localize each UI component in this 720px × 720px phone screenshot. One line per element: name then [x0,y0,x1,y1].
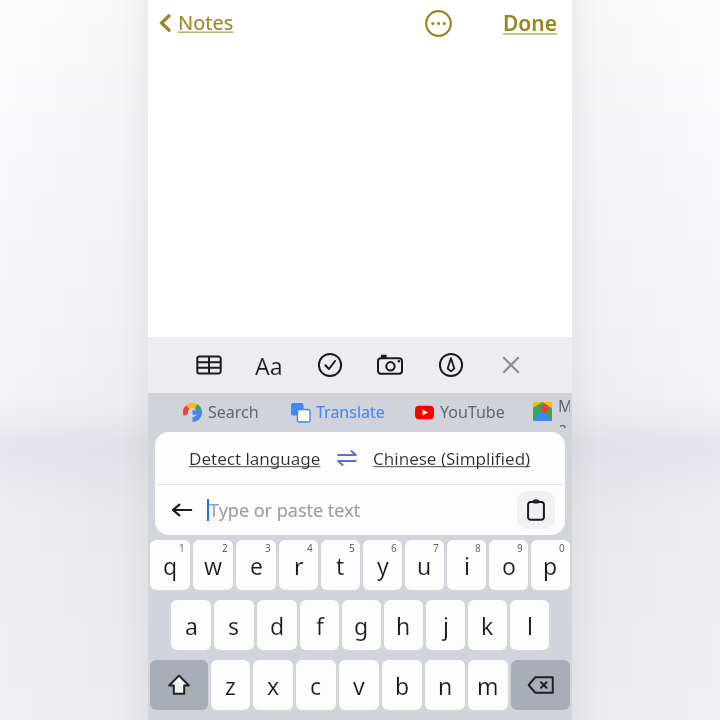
button[interactable]: Aa [252,348,286,382]
staticText: 8 [475,541,481,555]
button[interactable]: Paste from clipboard [517,491,555,529]
button[interactable]: Translate [289,399,387,425]
staticText: Search [208,401,259,423]
button[interactable]: c [296,660,336,710]
button[interactable]: Table [192,348,226,382]
button[interactable]: Shift [150,660,208,710]
button[interactable]: m [468,660,508,710]
staticText: n [438,670,453,701]
button[interactable]: Ma [531,393,572,430]
button[interactable]: x [253,660,293,710]
staticText: x [267,670,280,701]
button[interactable]: Detect language [183,443,327,474]
staticText: o [502,550,516,581]
staticText: t [336,550,345,581]
button[interactable]: Back [165,493,199,527]
staticText: b [395,670,410,701]
staticText: Type or paste text [209,498,361,523]
staticText: Notes [178,9,234,36]
staticText: Ma [558,395,570,428]
button[interactable]: l [510,600,549,650]
staticText: e [250,550,263,581]
staticText: YouTube [440,401,505,423]
staticText: a [185,610,198,641]
staticText: Chinese (Simplified) [373,447,531,470]
staticText: d [270,610,285,641]
button[interactable]: y [363,540,402,590]
button[interactable]: v [339,660,379,710]
button[interactable]: Camera [373,348,407,382]
staticText: j [443,610,449,641]
staticText: w [204,550,223,581]
button[interactable]: q [150,540,190,590]
button[interactable]: a [171,600,211,650]
button[interactable]: Swap languages [327,438,367,478]
staticText: 3 [265,541,271,555]
button[interactable]: Checklist [313,348,347,382]
button[interactable]: YouTube [413,399,507,425]
staticText: u [417,550,432,581]
button[interactable]: n [425,660,465,710]
button[interactable]: Markup [434,348,468,382]
staticText: 9 [517,541,523,555]
staticText: 6 [391,541,397,555]
button[interactable]: i [447,540,486,590]
staticText: r [294,550,304,581]
staticText: Done [503,9,558,38]
staticText: 7 [433,541,439,555]
staticText: 2 [222,541,228,555]
button[interactable]: e [236,540,276,590]
button[interactable]: s [214,600,254,650]
button[interactable]: w [193,540,233,590]
button[interactable]: Search [181,399,261,425]
staticText: z [225,670,236,701]
staticText: p [543,550,558,581]
button[interactable]: Close keyboard [494,348,528,382]
staticText: Aa [255,350,283,381]
button[interactable]: d [257,600,297,650]
staticText: 0 [559,541,565,555]
button[interactable]: h [384,600,423,650]
button[interactable]: u [405,540,444,590]
button[interactable]: Backspace [511,660,570,710]
button[interactable]: f [300,600,339,650]
button[interactable]: o [489,540,528,590]
button[interactable]: z [211,660,250,710]
button[interactable]: More options [420,5,456,41]
staticText: f [316,610,324,641]
staticText: c [310,670,322,701]
staticText: s [228,610,240,641]
staticText: g [354,610,369,641]
staticText: 1 [179,541,185,555]
button[interactable]: Chinese (Simplified) [367,443,537,474]
button[interactable]: k [468,600,507,650]
staticText: Detect language [189,447,321,470]
button[interactable]: Notes [154,5,238,40]
button[interactable]: j [426,600,465,650]
staticText: m [477,670,499,701]
staticText: l [527,610,533,641]
button[interactable]: r [279,540,318,590]
staticText: 5 [349,541,355,555]
staticText: y [377,550,389,581]
staticText: Translate [316,401,385,423]
staticText: i [464,550,470,581]
button[interactable]: t [321,540,360,590]
staticText: h [396,610,411,641]
button[interactable]: Done [497,5,564,42]
button[interactable]: b [382,660,422,710]
staticText: k [481,610,494,641]
button[interactable]: g [342,600,381,650]
staticText: q [163,550,178,581]
staticText: 4 [307,541,313,555]
button[interactable]: p [531,540,570,590]
staticText: v [353,670,365,701]
